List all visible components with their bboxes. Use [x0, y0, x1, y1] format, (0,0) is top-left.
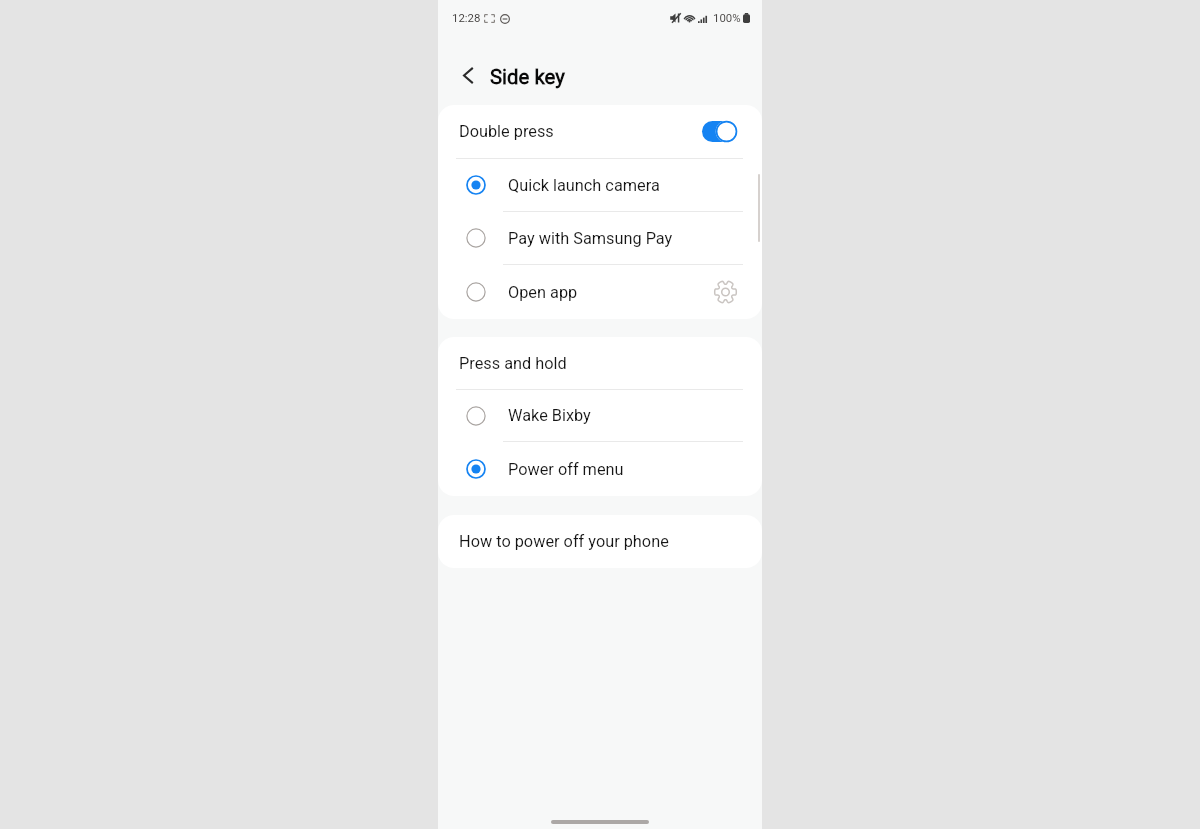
- button[interactable]: Double press: [438, 105, 762, 158]
- staticText: Quick launch camera: [508, 176, 660, 195]
- staticText: Wake Bixby: [508, 406, 591, 425]
- staticText: Pay with Samsung Pay: [508, 229, 673, 248]
- button[interactable]: Power off menu: [438, 442, 762, 496]
- button[interactable]: Quick launch camera: [438, 159, 762, 211]
- button[interactable]: Double press on: [702, 121, 737, 142]
- staticText: Open app: [508, 283, 578, 302]
- button[interactable]: Wake Bixby: [438, 390, 762, 441]
- button[interactable]: Pay with Samsung Pay: [438, 212, 762, 264]
- button[interactable]: Open app settings: [711, 278, 739, 306]
- staticText: Power off menu: [508, 460, 624, 479]
- staticText: Press and hold: [459, 354, 567, 373]
- staticText: Side key: [490, 65, 565, 89]
- staticText: 12:28: [452, 11, 481, 24]
- staticText: Double press: [459, 122, 554, 141]
- button[interactable]: Open app: [438, 265, 762, 319]
- button[interactable]: Back: [454, 61, 482, 89]
- button[interactable]: How to power off your phone: [438, 515, 762, 568]
- staticText: 100%: [713, 11, 741, 24]
- staticText: How to power off your phone: [459, 532, 669, 551]
